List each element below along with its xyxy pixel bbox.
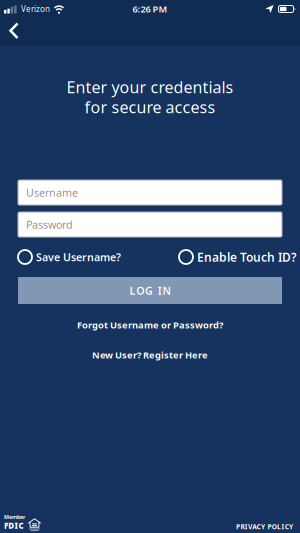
staticText: Save Username? [36,250,121,264]
button[interactable]: New User? Register Here [92,348,208,362]
staticText: Member [4,513,25,520]
staticText: for secure access [84,96,215,118]
staticText: PRIVACY POLICY [236,522,293,531]
button[interactable]: Username [18,180,282,205]
staticText: Enable Touch ID? [197,249,297,265]
button[interactable]: Save Username? [18,250,121,264]
button[interactable]: Enable Touch ID? [179,249,297,265]
button[interactable]: Password [18,212,282,237]
button[interactable]: LOG IN [18,277,282,304]
staticText: LOG IN [129,283,170,298]
staticText: Verizon [21,4,50,14]
button[interactable]: PRIVACY POLICY [236,522,293,531]
staticText: New User? Register Here [92,349,208,361]
staticText: Forgot Username or Password? [77,319,223,331]
staticText: FDIC [4,520,24,531]
staticText: Enter your credentials [66,76,233,98]
staticText: 6:26 PM [132,3,167,15]
button[interactable]: Back [0,22,26,40]
staticText: Password [26,217,73,232]
button[interactable]: Forgot Username or Password? [77,318,223,332]
staticText: Username [26,185,78,200]
